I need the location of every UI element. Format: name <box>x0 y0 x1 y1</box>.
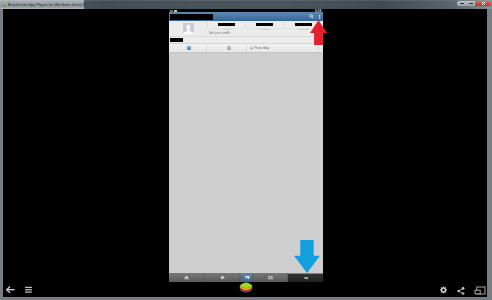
button[interactable]: Minimize <box>457 1 466 6</box>
staticText: Photo Map <box>254 46 270 50</box>
staticText: Edit your profile <box>209 31 231 35</box>
button[interactable]: Menu <box>22 283 35 296</box>
button[interactable]: Edit your profile <box>207 29 323 36</box>
button[interactable]: Grid view <box>169 44 206 52</box>
button[interactable]: Explore <box>204 273 240 282</box>
button[interactable]: Search <box>307 12 316 21</box>
button[interactable]: List view <box>207 44 246 52</box>
button[interactable]: Back <box>4 283 17 296</box>
staticText: following <box>298 27 309 30</box>
button[interactable]: following <box>284 21 323 29</box>
staticText: 5:18 <box>315 9 322 12</box>
button[interactable]: Share <box>454 284 467 297</box>
button[interactable]: Gallery <box>240 273 253 282</box>
button[interactable]: Profile <box>288 273 323 282</box>
button[interactable]: Maximize <box>466 1 475 6</box>
button[interactable]: Close <box>475 1 491 6</box>
staticText: BlueStacks App Player for Windows (beta-… <box>8 2 86 7</box>
staticText: followers <box>259 27 270 30</box>
button[interactable]: Camera <box>253 273 288 282</box>
button[interactable]: Home <box>169 273 204 282</box>
button[interactable]: Photo Map <box>247 44 323 52</box>
button[interactable]: photos <box>207 21 245 29</box>
button[interactable]: Settings <box>437 283 450 296</box>
button[interactable]: Resize window <box>473 284 486 297</box>
button[interactable]: More options <box>316 12 323 21</box>
button[interactable]: followers <box>245 21 284 29</box>
staticText: photos <box>223 27 231 30</box>
